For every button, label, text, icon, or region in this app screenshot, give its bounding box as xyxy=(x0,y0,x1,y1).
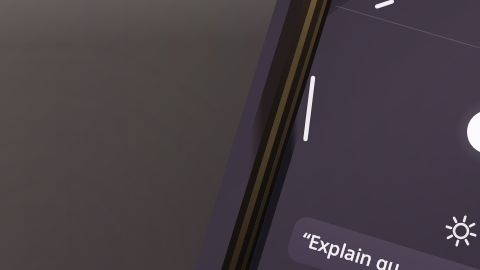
other: Assistant screen on phone xyxy=(0,0,480,270)
button[interactable] xyxy=(0,0,480,270)
